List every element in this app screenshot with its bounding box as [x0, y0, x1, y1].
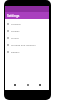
- staticText: Display: [11, 29, 20, 32]
- staticText: Wireless: [11, 22, 21, 25]
- button[interactable]: Storage and memory: [5, 41, 49, 48]
- button[interactable]: Wireless: [5, 20, 49, 27]
- button[interactable]: Recents: [37, 82, 42, 87]
- button[interactable]: Display: [5, 27, 49, 34]
- staticText: Storage and memory: [11, 43, 36, 46]
- button[interactable]: Home: [25, 82, 30, 87]
- button[interactable]: Sound: [5, 34, 49, 41]
- staticText: Battery: [11, 50, 20, 53]
- staticText: Sound: [11, 36, 19, 39]
- staticText: Settings: [7, 14, 20, 18]
- button[interactable]: Battery: [5, 48, 49, 55]
- button[interactable]: Back: [12, 82, 17, 87]
